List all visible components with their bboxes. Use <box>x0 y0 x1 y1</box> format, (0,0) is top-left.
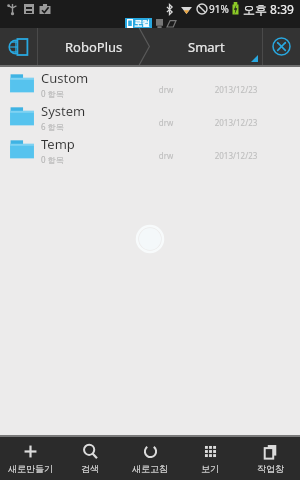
button[interactable]: 작업창 <box>240 437 300 480</box>
staticText: 새로고침 <box>132 463 168 474</box>
button[interactable]: Temp <box>0 133 300 166</box>
staticText: 0 항목 <box>41 154 64 165</box>
staticText: 새로만들기 <box>8 463 53 474</box>
staticText: 검색 <box>81 463 99 474</box>
staticText: 0 항목 <box>41 88 64 99</box>
staticText: System <box>41 102 86 120</box>
staticText: 오후 8:39 <box>243 1 294 17</box>
staticText: 보기 <box>201 463 219 474</box>
staticText: drw <box>136 84 196 95</box>
staticText: 2013/12/23 <box>196 117 276 128</box>
button[interactable]: Smart <box>150 28 262 65</box>
button[interactable]: 닫기 <box>263 28 300 65</box>
staticText: Smart <box>188 38 225 56</box>
staticText: 6 항목 <box>41 121 64 132</box>
button[interactable]: System <box>0 100 300 133</box>
staticText: 2013/12/23 <box>196 84 276 95</box>
staticText: Temp <box>41 135 75 153</box>
button[interactable]: RoboPlus <box>38 28 150 65</box>
staticText: 로컬 <box>134 18 150 28</box>
staticText: RoboPlus <box>65 38 123 56</box>
button[interactable]: 새로만들기 <box>0 437 60 480</box>
staticText: drw <box>136 150 196 161</box>
button[interactable]: 보기 <box>180 437 240 480</box>
staticText: 91% <box>209 2 229 16</box>
button[interactable]: 앱 아이콘 <box>0 28 37 65</box>
button[interactable]: 검색 <box>60 437 120 480</box>
staticText: 작업창 <box>257 463 284 474</box>
button[interactable]: 새로고침 <box>120 437 180 480</box>
staticText: Custom <box>41 69 89 87</box>
button[interactable]: Custom <box>0 67 300 100</box>
staticText: 2013/12/23 <box>196 150 276 161</box>
staticText: drw <box>136 117 196 128</box>
